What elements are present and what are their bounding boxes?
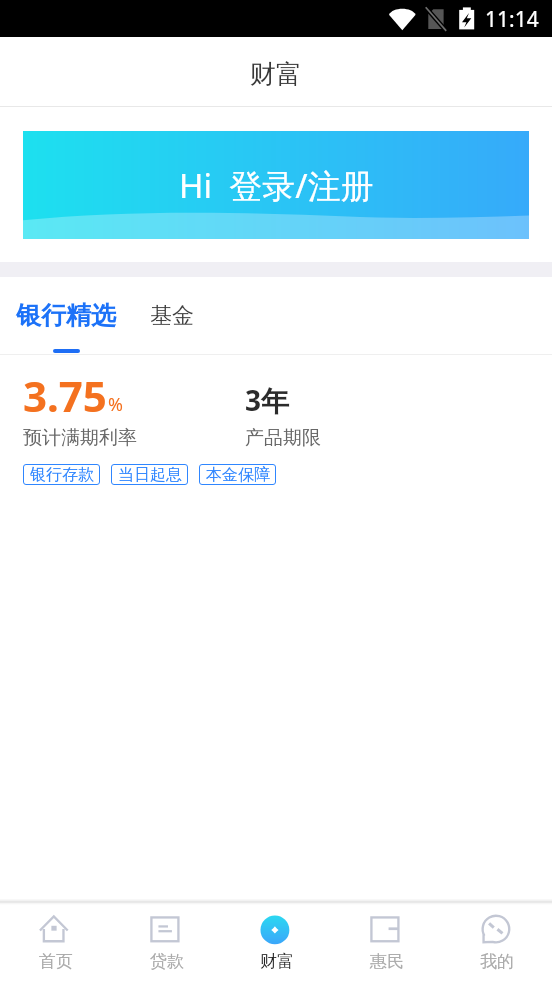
staticText: 预计满期利率 [23,426,137,450]
staticText: 贷款 [150,951,184,972]
staticText: 当日起息 [118,465,182,485]
button[interactable]: 首页 [0,905,111,981]
button[interactable]: Hi 登录/注册 [23,131,529,239]
staticText: 3年 [245,381,290,419]
button[interactable]: 贷款 [111,905,222,981]
staticText: 基金 [150,302,194,330]
staticText: 本金保障 [206,465,270,485]
staticText: 惠民 [370,951,404,972]
staticText: 首页 [39,951,73,972]
staticText: 11:14 [485,5,539,34]
staticText: Hi 登录/注册 [179,163,374,208]
button[interactable]: 惠民 [332,905,442,981]
button[interactable]: 银行精选 [16,300,116,331]
staticText: 财富 [260,951,294,972]
staticText: 银行存款 [30,465,94,485]
staticText: 我的 [480,951,514,972]
button[interactable]: 当日起息 [111,464,188,485]
staticText: 3.75 [23,367,107,424]
staticText: % [108,392,123,417]
staticText: 产品期限 [245,426,321,450]
button[interactable]: 3.75 [0,355,552,502]
staticText: 财富 [250,58,302,91]
button[interactable]: 基金 [150,302,194,330]
button[interactable]: 我的 [442,905,552,981]
button[interactable]: 本金保障 [199,464,276,485]
staticText: 银行精选 [16,300,116,331]
button[interactable]: 财富 [222,905,332,981]
button[interactable]: 银行存款 [23,464,100,485]
